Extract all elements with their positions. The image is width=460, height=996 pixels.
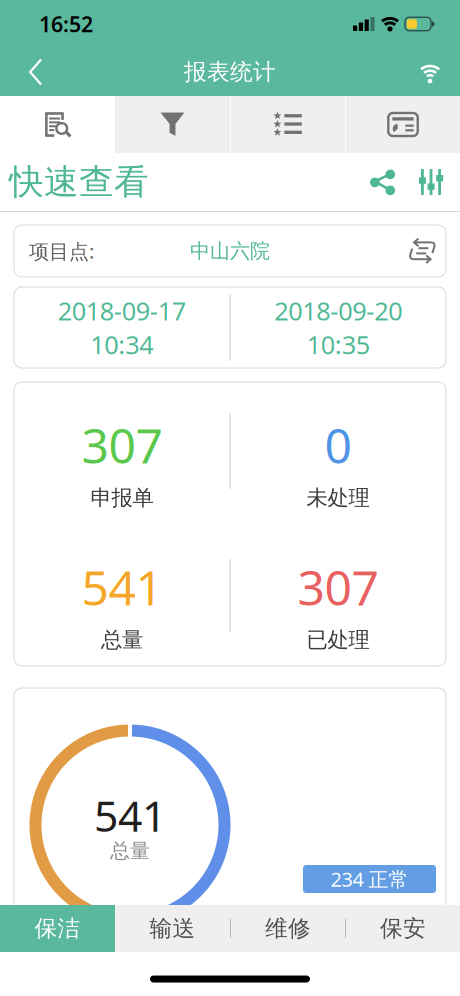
button[interactable]: 查询	[0, 96, 115, 153]
staticText: 快速查看	[9, 161, 149, 203]
staticText: 维修	[265, 915, 311, 942]
button[interactable]: 保洁	[0, 905, 115, 952]
staticText: 541	[81, 555, 162, 619]
staticText: 0	[324, 413, 351, 477]
staticText: 541	[94, 787, 166, 844]
staticText: 项目点:	[29, 238, 94, 264]
staticText: 已处理	[306, 627, 369, 653]
staticText: 2018-09-20	[274, 294, 402, 327]
staticText: 申报单	[90, 485, 153, 511]
staticText: 中山六院	[190, 239, 270, 263]
staticText: 307	[81, 413, 162, 477]
staticText: 10:34	[90, 327, 153, 361]
button[interactable]: Back	[0, 48, 42, 95]
staticText: 10:35	[307, 327, 370, 361]
staticText: 总量	[101, 627, 143, 653]
button[interactable]: Wi-Fi	[414, 50, 460, 94]
button[interactable]: 分享	[370, 169, 395, 195]
staticText: 16:52	[39, 10, 93, 38]
button[interactable]: 筛选	[115, 96, 230, 153]
staticText: 保安	[380, 915, 426, 942]
button[interactable]: 保安	[346, 905, 460, 952]
staticText: 报表统计	[184, 58, 276, 86]
staticText: 输送	[149, 915, 195, 942]
button[interactable]: 2018-09-20	[230, 287, 446, 368]
button[interactable]: 维修	[231, 905, 345, 952]
button[interactable]: 设置	[419, 169, 443, 195]
staticText: 2018-09-17	[58, 294, 186, 327]
button[interactable]: 列表	[231, 96, 345, 153]
staticText: 307	[297, 555, 378, 619]
staticText: 234 正常	[330, 866, 408, 892]
button[interactable]: 项目点:	[14, 225, 446, 277]
button[interactable]: 报表	[346, 96, 460, 153]
staticText: 保洁	[34, 915, 80, 942]
staticText: 未处理	[306, 485, 369, 511]
button[interactable]: 输送	[115, 905, 230, 952]
button[interactable]: 2018-09-17	[14, 287, 229, 368]
staticText: 总量	[110, 838, 150, 863]
